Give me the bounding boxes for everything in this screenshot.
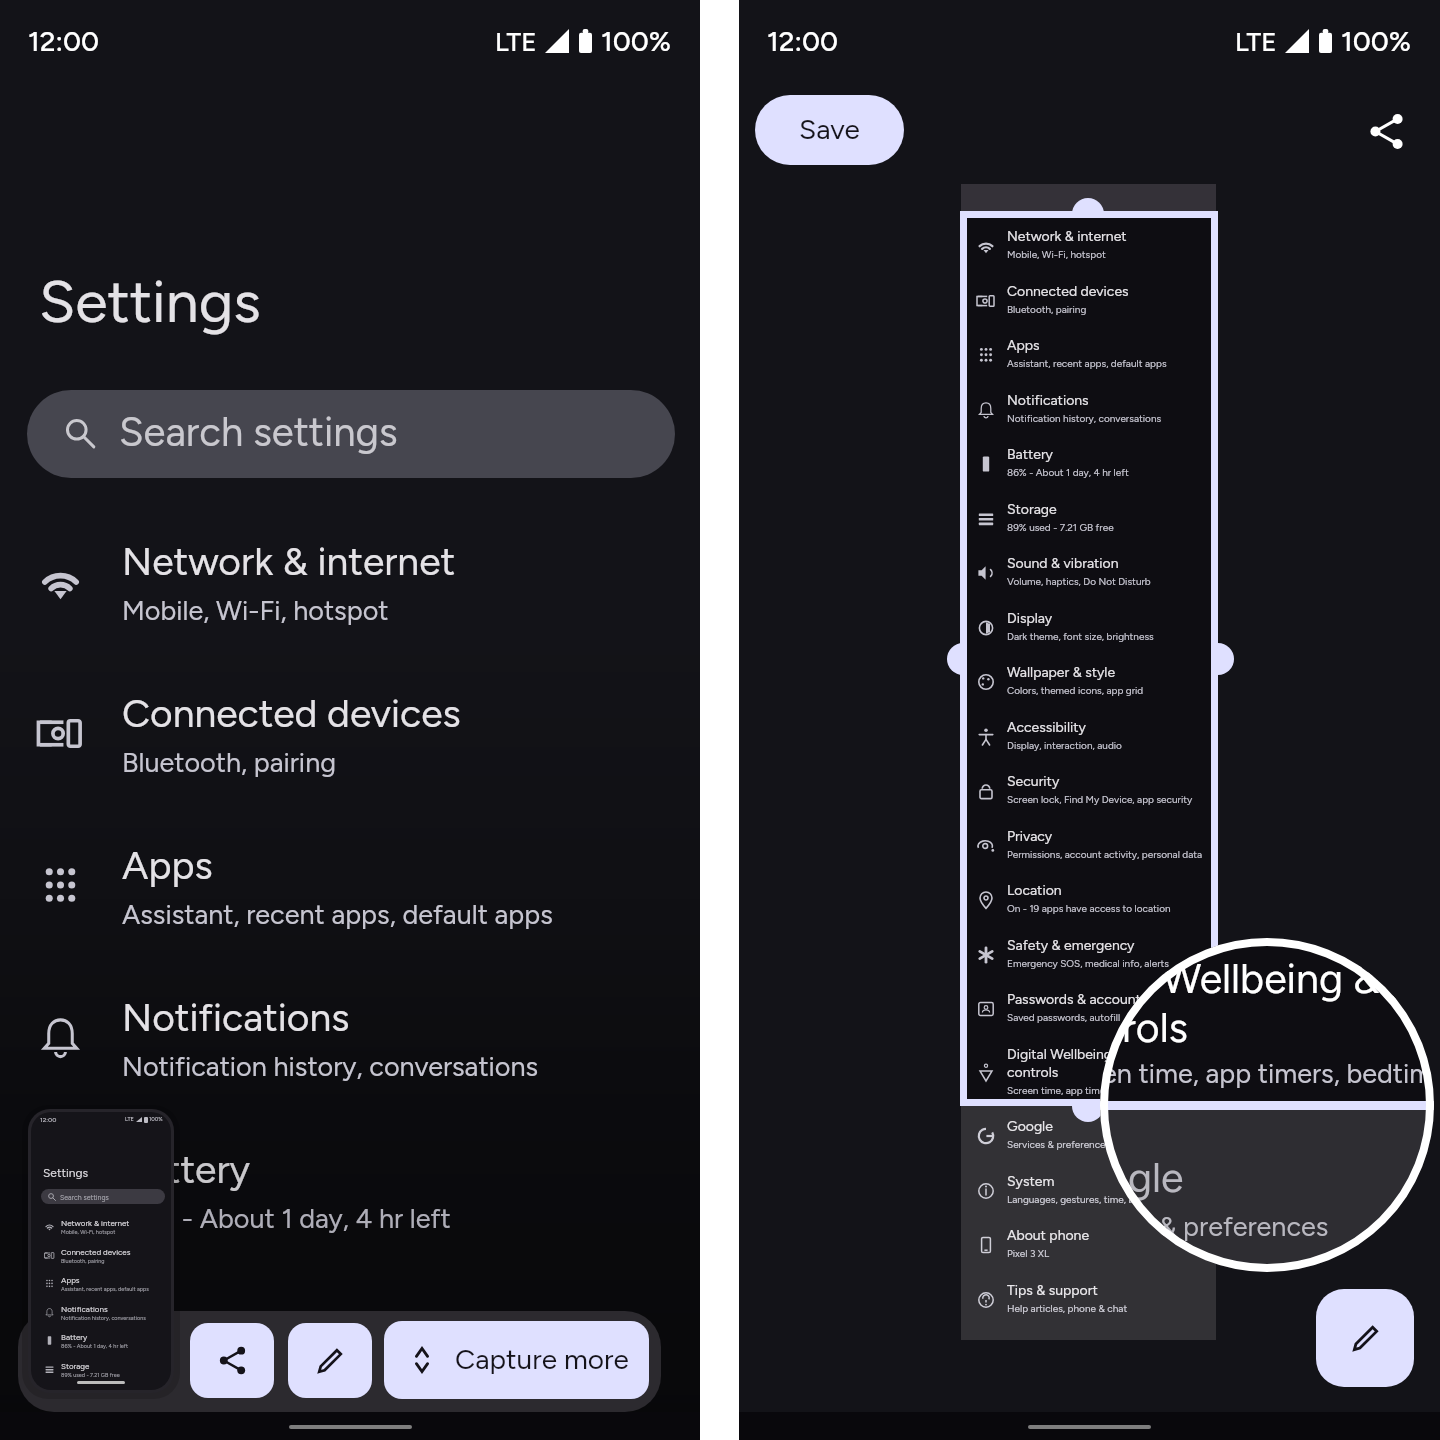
staticText: 86% - About 1 day, 4 hr left — [122, 1202, 451, 1234]
staticText: System — [1007, 1173, 1055, 1190]
staticText: gle — [1128, 1153, 1184, 1202]
staticText: Connected devices — [61, 1247, 131, 1257]
staticText: Bluetooth, pairing — [1007, 303, 1087, 315]
staticText: Notifications — [1007, 392, 1089, 409]
staticText: Settings — [43, 1166, 89, 1180]
staticText: Pixel 3 XL — [1007, 1247, 1050, 1259]
staticText: Help articles, phone & chat — [1007, 1302, 1128, 1314]
staticText: Wallpaper & style — [1007, 664, 1116, 681]
staticText: Display — [1007, 610, 1053, 627]
staticText: 12:00 — [28, 24, 99, 58]
staticText: Mobile, Wi-Fi, hotspot — [61, 1229, 116, 1236]
staticText: Battery — [1007, 446, 1053, 463]
staticText: Mobile, Wi-Fi, hotspot — [122, 594, 389, 626]
staticText: 86% - About 1 day, 4 hr left — [61, 1343, 128, 1350]
staticText: Services & preferences — [1007, 1138, 1111, 1150]
staticText: 89% used - 7.21 GB free — [61, 1372, 120, 1379]
staticText: Screen time, app timers — [1007, 1084, 1114, 1096]
staticText: Apps — [1007, 337, 1040, 354]
staticText: Display, interaction, audio — [1007, 739, 1122, 751]
staticText: Notifications — [61, 1304, 108, 1314]
staticText: Assistant, recent apps, default apps — [1007, 357, 1167, 369]
staticText: Storage — [122, 1298, 261, 1345]
staticText: 12:00 — [40, 1116, 57, 1124]
staticText: Capture more — [455, 1342, 629, 1376]
staticText: 100% — [601, 24, 671, 58]
staticText: Notification history, conversations — [61, 1315, 146, 1322]
staticText: Assistant, recent apps, default apps — [61, 1286, 149, 1293]
button[interactable]: Edit — [1316, 1289, 1414, 1387]
staticText: Digital Wellbeing & controls — [1007, 1046, 1125, 1081]
staticText: Search settings — [119, 408, 398, 456]
button[interactable]: Network & internet — [0, 522, 700, 674]
staticText: Google — [1007, 1118, 1053, 1135]
staticText: Connected devices — [1007, 283, 1129, 300]
staticText: Sound & vibration — [1007, 555, 1119, 572]
staticText: Battery — [61, 1332, 88, 1342]
button[interactable]: Battery — [0, 1130, 700, 1282]
staticText: Languages, gestures, time, backup — [1007, 1193, 1162, 1205]
staticText: Privacy — [1007, 828, 1053, 845]
staticText: Network & internet — [1007, 228, 1127, 245]
staticText: Security — [1007, 773, 1060, 790]
staticText: 100% — [149, 1116, 163, 1123]
button[interactable]: Search settings — [27, 390, 675, 478]
staticText: Notifications — [122, 994, 350, 1041]
staticText: Settings — [39, 266, 261, 337]
button[interactable]: Connected devices — [0, 674, 700, 826]
staticText: Screen lock, Find My Device, app securit… — [1007, 793, 1193, 805]
staticText: About phone — [1007, 1227, 1090, 1244]
staticText: Permissions, account activity, personal … — [1007, 848, 1203, 860]
staticText: Colors, themed icons, app grid — [1007, 684, 1144, 696]
staticText: Dark theme, font size, brightness — [1007, 630, 1154, 642]
staticText: Save — [799, 112, 860, 146]
staticText: Location — [1007, 882, 1062, 899]
staticText: Notification history, conversations — [122, 1050, 539, 1082]
staticText: 100% — [1341, 24, 1411, 58]
staticText: en time, app timers, bedtim — [1102, 1057, 1433, 1089]
staticText: Accessibility — [1007, 719, 1086, 736]
button[interactable]: Share — [190, 1323, 274, 1398]
staticText: Connected devices — [122, 690, 461, 737]
staticText: Safety & emergency — [1007, 937, 1135, 954]
staticText: LTE — [1235, 26, 1277, 57]
staticText: Assistant, recent apps, default apps — [122, 898, 553, 930]
staticText: LTE — [495, 26, 537, 57]
staticText: Volume, haptics, Do Not Disturb — [1007, 575, 1151, 587]
staticText: 86% - About 1 day, 4 hr left — [1007, 466, 1129, 478]
staticText: 89% used - 7.21 GB free — [1007, 521, 1114, 533]
staticText: Apps — [61, 1275, 80, 1285]
staticText: Tips & support — [1007, 1282, 1098, 1299]
staticText: LTE — [125, 1116, 134, 1123]
staticText: Search settings — [60, 1193, 109, 1201]
staticText: Network & internet — [61, 1218, 130, 1228]
staticText: Passwords & accounts — [1007, 991, 1148, 1008]
staticText: Apps — [122, 842, 213, 889]
staticText: Saved passwords, autofill — [1007, 1011, 1121, 1023]
staticText: Mobile, Wi-Fi, hotspot — [1007, 248, 1106, 260]
staticText: On - 19 apps have access to location — [1007, 902, 1171, 914]
staticText: Emergency SOS, medical info, alerts — [1007, 957, 1169, 969]
staticText: rols — [1122, 1003, 1188, 1052]
staticText: 12:00 — [767, 24, 838, 58]
button[interactable]: Apps — [0, 826, 700, 978]
staticText: Notification history, conversations — [1007, 412, 1162, 424]
staticText: & preferences — [1159, 1210, 1329, 1242]
button[interactable]: Storage — [0, 1282, 700, 1434]
button[interactable]: Save — [755, 95, 904, 165]
button[interactable]: Share — [1354, 99, 1418, 163]
staticText: Battery — [122, 1146, 251, 1193]
button[interactable]: Edit — [288, 1323, 372, 1398]
button[interactable]: Notifications — [0, 978, 700, 1130]
staticText: Storage — [1007, 501, 1057, 518]
staticText: Network & internet — [122, 538, 456, 585]
button[interactable]: Capture more — [384, 1321, 649, 1399]
staticText: Bluetooth, pairing — [61, 1258, 105, 1265]
staticText: Bluetooth, pairing — [122, 746, 337, 778]
staticText: Wellbeing & p — [1162, 954, 1414, 1003]
staticText: Storage — [61, 1361, 90, 1371]
staticText: 89% used - 7.21 GB free — [122, 1354, 410, 1386]
